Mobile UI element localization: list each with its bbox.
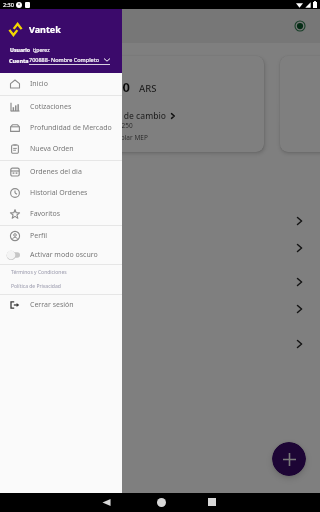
staticText: Tipo de cambio bbox=[104, 110, 166, 122]
button[interactable]: Back bbox=[97, 493, 115, 511]
staticText: tjperez bbox=[33, 46, 50, 53]
staticText: Activar modo oscuro bbox=[30, 250, 98, 260]
button[interactable]: 1.250.000,00 bbox=[16, 56, 264, 152]
button[interactable] bbox=[0, 295, 320, 322]
button[interactable]: 700888- Nombre Completo bbox=[29, 56, 110, 65]
button[interactable]: Cotizaciones bbox=[0, 96, 122, 117]
staticText: Profundidad de Mercado bbox=[30, 123, 112, 133]
button[interactable]: Recents bbox=[203, 493, 221, 511]
button[interactable]: Tipo de cambio bbox=[104, 110, 176, 122]
button[interactable]: Nueva Orden bbox=[0, 138, 122, 160]
button[interactable]: Historial Ordenes bbox=[0, 182, 122, 203]
button[interactable]: Favoritos bbox=[0, 203, 122, 224]
staticText: Inicio bbox=[40, 17, 75, 35]
button[interactable]: Cerrar sesión bbox=[0, 295, 122, 314]
button[interactable]: Ordenes del dia bbox=[0, 161, 122, 182]
staticText: Favoritos bbox=[30, 209, 61, 219]
staticText: Cuenta bbox=[9, 57, 29, 64]
staticText: Cerrar sesión bbox=[30, 300, 74, 310]
staticText: Perfil bbox=[30, 231, 48, 241]
staticText: Nueva Orden bbox=[30, 144, 74, 154]
button[interactable]: Home bbox=[152, 493, 170, 511]
staticText: Cotizaciones bbox=[30, 102, 72, 112]
staticText: Usuario bbox=[10, 46, 31, 53]
button[interactable]: Connection status bbox=[290, 16, 310, 36]
button[interactable] bbox=[0, 207, 320, 234]
button[interactable] bbox=[0, 330, 320, 357]
staticText: 2:30 bbox=[3, 1, 14, 8]
button[interactable]: Menu bbox=[10, 15, 32, 37]
staticText: Vantek bbox=[29, 23, 61, 35]
staticText: Inicio bbox=[30, 79, 48, 89]
staticText: Ordenes del dia bbox=[30, 167, 82, 177]
staticText: Política de Privacidad bbox=[11, 283, 61, 290]
staticText: 1.250.000,00 bbox=[52, 78, 130, 96]
button[interactable]: Nueva orden bbox=[272, 442, 306, 476]
button[interactable]: Términos y Condiciones bbox=[0, 265, 122, 279]
staticText: 700888- Nombre Completo bbox=[29, 56, 104, 63]
button[interactable]: Profundidad de Mercado bbox=[0, 117, 122, 138]
staticText: Dolar MEP bbox=[116, 133, 148, 142]
button[interactable]: Perfil bbox=[0, 226, 122, 245]
button[interactable]: Política de Privacidad bbox=[0, 279, 122, 293]
staticText: Términos y Condiciones bbox=[11, 269, 67, 276]
button[interactable] bbox=[0, 268, 320, 295]
button[interactable]: Inicio bbox=[0, 73, 122, 95]
staticText: Historial Ordenes bbox=[30, 188, 88, 198]
button[interactable]: Activar modo oscuro bbox=[0, 245, 122, 264]
staticText: 1.250 bbox=[116, 121, 133, 130]
button[interactable] bbox=[0, 234, 320, 261]
staticText: ARS bbox=[139, 82, 157, 95]
